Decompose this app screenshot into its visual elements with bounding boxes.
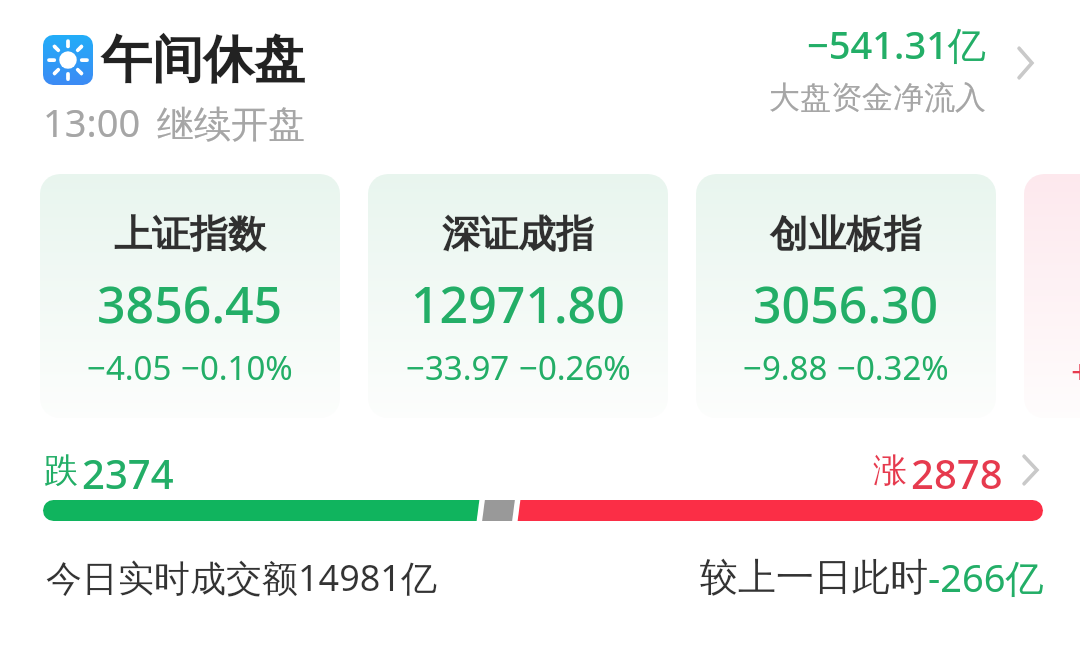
- staticText: 12971.80: [411, 270, 625, 338]
- staticText: 3056.30: [753, 270, 939, 338]
- button[interactable]: 创业板指: [696, 174, 996, 418]
- button[interactable]: 跌: [44, 446, 1040, 494]
- staticText: −33.97: [406, 345, 510, 390]
- staticText: −9.88: [743, 345, 828, 390]
- staticText: 3856.45: [97, 270, 283, 338]
- button[interactable]: 科创50: [1024, 174, 1080, 418]
- staticText: −0.10%: [181, 345, 293, 390]
- staticText: 13:00: [43, 96, 141, 148]
- other: Midday break: [43, 35, 93, 85]
- staticText: 2878: [911, 446, 1003, 494]
- button[interactable]: −541.31亿: [769, 18, 1035, 117]
- staticText: −4.05: [87, 345, 172, 390]
- staticText: 大盘资金净流入: [769, 78, 986, 117]
- staticText: −541.31亿: [807, 18, 986, 70]
- button[interactable]: Open breadth detail: [1021, 455, 1040, 485]
- button[interactable]: Open capital flow detail: [1016, 47, 1035, 79]
- button[interactable]: Midday break: [43, 28, 305, 148]
- staticText: −0.32%: [837, 345, 949, 390]
- staticText: 较上一日此时: [700, 553, 928, 601]
- staticText: 上证指数: [114, 210, 266, 258]
- button[interactable]: 深证成指: [368, 174, 668, 418]
- staticText: 继续开盘: [157, 101, 305, 148]
- staticText: −0.26%: [519, 345, 631, 390]
- staticText: 跌: [44, 449, 78, 492]
- staticText: +2.15: [1071, 349, 1080, 394]
- staticText: 2374: [82, 446, 174, 494]
- button[interactable]: 上证指数: [40, 174, 340, 418]
- staticText: 午间休盘: [101, 28, 305, 92]
- staticText: -266亿: [928, 551, 1044, 603]
- staticText: 今日实时成交额14981亿: [46, 553, 437, 602]
- staticText: 涨: [873, 449, 907, 492]
- staticText: 创业板指: [770, 210, 922, 258]
- staticText: 深证成指: [442, 210, 594, 258]
